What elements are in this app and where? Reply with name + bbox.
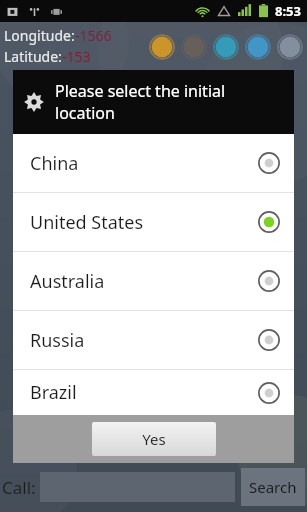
staticText: Call: [2,476,36,499]
button[interactable]: Weather layer [213,34,239,60]
button[interactable]: Weather layer [277,34,303,60]
button[interactable]: Search [241,468,305,506]
button[interactable]: Australia [13,252,294,310]
staticText: Search [249,477,297,497]
staticText: Brazil [30,380,77,405]
button[interactable]: Russia [13,311,294,369]
staticText: United States [30,210,144,235]
staticText: -153 [62,47,91,66]
button[interactable]: United States [13,193,294,251]
button[interactable]: Yes [92,422,216,456]
staticText: Please select the initial location [55,80,284,124]
staticText: Yes [142,429,166,449]
button[interactable]: China [13,134,294,192]
staticText: Latitude: [4,47,62,66]
button[interactable]: Brazil [13,370,294,415]
staticText: Longitude: [4,26,75,45]
staticText: Australia [30,269,105,294]
staticText: Russia [30,328,85,353]
staticText: -1566 [75,26,112,45]
staticText: China [30,151,79,176]
staticText: 8:53 [275,2,301,20]
button[interactable]: Weather layer [245,34,271,60]
button[interactable]: Weather layer [181,34,207,60]
button[interactable]: Weather layer [149,34,175,60]
